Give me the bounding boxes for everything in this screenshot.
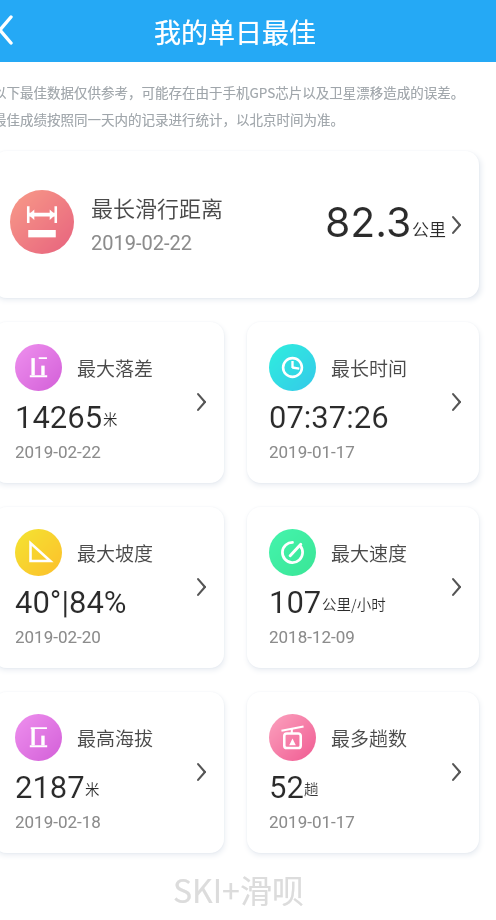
staticText: 最多趟数 xyxy=(331,724,408,752)
staticText: 2019-02-22 xyxy=(15,442,101,462)
staticText: 40°|84% xyxy=(15,584,127,620)
staticText: 我的单日最佳 xyxy=(154,12,316,51)
staticText: 52 xyxy=(269,769,304,805)
staticText: 以下最佳数据仅供参考，可能存在由于手机GPS芯片以及卫星漂移造成的误差。最佳成绩… xyxy=(0,82,472,129)
staticText: 最大落差 xyxy=(77,354,154,382)
button[interactable]: Back xyxy=(0,8,46,54)
staticText: 2019-01-17 xyxy=(269,812,355,832)
staticText: 最长时间 xyxy=(331,354,408,382)
button[interactable]: 最大坡度 xyxy=(0,507,224,668)
button[interactable]: 最高海拔 xyxy=(0,692,224,853)
staticText: 最高海拔 xyxy=(77,724,154,752)
staticText: 米 xyxy=(103,408,118,429)
staticText: 14265 xyxy=(15,399,103,435)
button[interactable]: 最多趟数 xyxy=(247,692,479,853)
staticText: 107 xyxy=(269,584,322,620)
button[interactable]: 最大速度 xyxy=(247,507,479,668)
staticText: 2019-02-20 xyxy=(15,627,101,647)
staticText: 07:37:26 xyxy=(269,399,389,435)
staticText: SKI+滑呗 xyxy=(173,866,304,912)
staticText: 公里/小时 xyxy=(322,593,386,614)
staticText: 最长滑行距离 xyxy=(91,191,224,223)
staticText: 2019-01-17 xyxy=(269,442,355,462)
staticText: 最大坡度 xyxy=(77,539,154,567)
staticText: 2019-02-22 xyxy=(91,231,192,254)
staticText: 趟 xyxy=(304,778,319,799)
staticText: 米 xyxy=(85,778,100,799)
staticText: 2018-12-09 xyxy=(269,627,355,647)
staticText: 2019-02-18 xyxy=(15,812,101,832)
staticText: 2187 xyxy=(15,769,85,805)
button[interactable]: 最长滑行距离 xyxy=(0,151,479,298)
staticText: 82.3 xyxy=(325,197,412,247)
button[interactable]: 最长时间 xyxy=(247,322,479,483)
staticText: 最大速度 xyxy=(331,539,408,567)
staticText: 公里 xyxy=(412,216,446,241)
button[interactable]: 最大落差 xyxy=(0,322,224,483)
